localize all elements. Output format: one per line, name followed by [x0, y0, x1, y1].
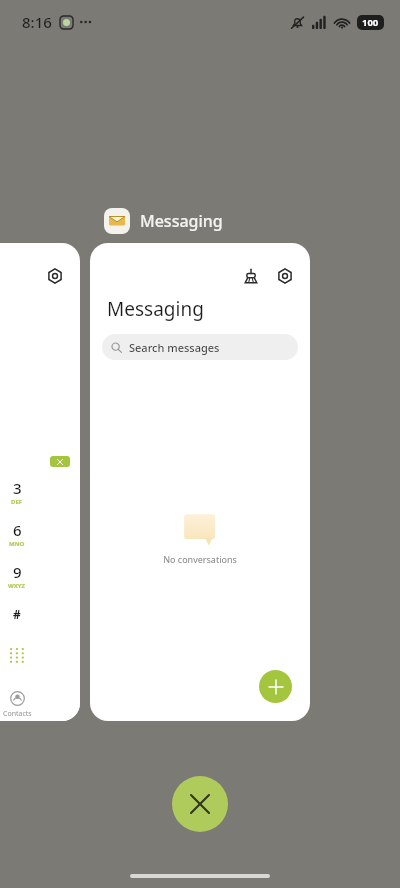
button[interactable]: 6 — [0, 520, 37, 550]
staticText: Messaging — [140, 210, 223, 232]
staticText: Search messages — [129, 340, 220, 355]
button[interactable]: Clean up — [238, 263, 264, 289]
staticText: 8:16 — [22, 12, 52, 32]
button[interactable]: Keypad — [2, 640, 32, 670]
button[interactable]: Clear all — [172, 776, 228, 832]
button[interactable]: Clean up — [90, 243, 310, 721]
staticText: 100 — [362, 16, 379, 29]
button[interactable]: Dialer settings — [0, 243, 80, 721]
button[interactable]: Settings — [272, 263, 298, 289]
staticText: Messaging — [107, 296, 204, 322]
button[interactable]: New conversation — [259, 670, 292, 703]
staticText: 9 — [13, 562, 22, 582]
staticText: # — [13, 606, 21, 622]
staticText: Contacts — [3, 709, 32, 718]
staticText: 6 — [13, 520, 22, 540]
button[interactable]: 3 — [0, 478, 37, 508]
button[interactable]: 9 — [0, 562, 37, 592]
button[interactable]: Dialer settings — [42, 263, 68, 289]
staticText: MNO — [9, 540, 25, 548]
button[interactable]: Backspace — [50, 456, 70, 467]
button[interactable]: Search messages — [102, 334, 298, 360]
staticText: 3 — [13, 478, 22, 498]
staticText: No conversations — [163, 553, 237, 565]
staticText: WXYZ — [8, 582, 26, 590]
button[interactable]: Messaging — [100, 206, 227, 236]
button[interactable]: # — [0, 602, 34, 626]
button[interactable]: Contacts — [0, 688, 35, 721]
staticText: DEF — [11, 498, 23, 506]
